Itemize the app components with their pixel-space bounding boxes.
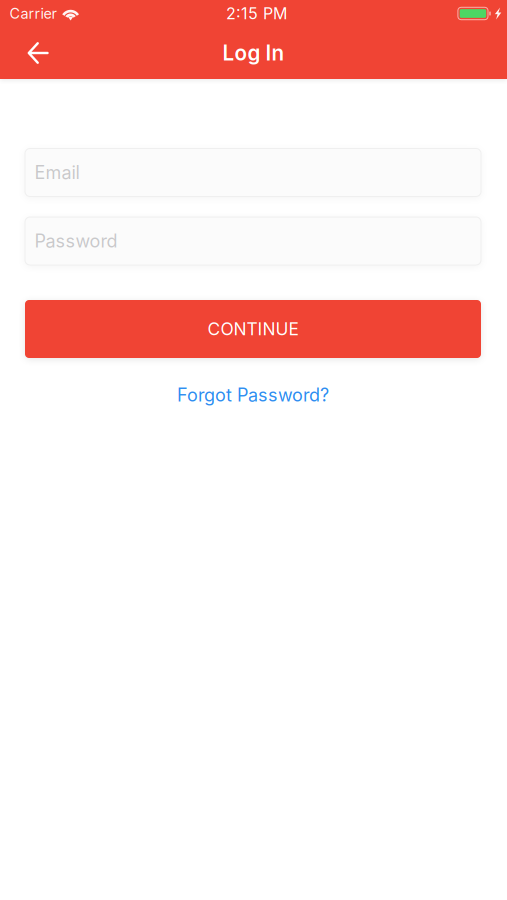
button[interactable]: CONTINUE — [25, 300, 481, 358]
staticText: Log In — [222, 40, 284, 65]
staticText: Forgot Password? — [177, 384, 329, 406]
button[interactable]: Back — [12, 27, 64, 79]
staticText: Email — [34, 162, 79, 183]
staticText: Password — [34, 230, 117, 252]
staticText: CONTINUE — [207, 318, 298, 339]
staticText: Carrier — [9, 5, 56, 22]
staticText: 2:15 PM — [226, 4, 287, 23]
button[interactable]: Forgot Password? — [177, 383, 329, 407]
